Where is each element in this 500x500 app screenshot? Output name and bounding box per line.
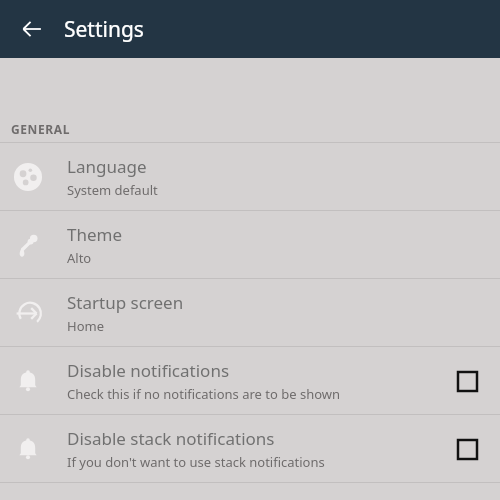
staticText: Startup screen: [67, 291, 184, 314]
staticText: Alto: [67, 249, 92, 267]
button[interactable]: Theme: [0, 211, 500, 278]
staticText: Check this if no notifications are to be…: [67, 385, 341, 403]
button[interactable]: Back: [10, 7, 54, 51]
staticText: If you don't want to use stack notificat…: [67, 453, 325, 471]
staticText: Settings: [64, 15, 144, 44]
staticText: Theme: [67, 223, 123, 246]
button[interactable]: Toggle checkbox: [452, 366, 482, 396]
staticText: Disable notifications: [67, 359, 230, 382]
staticText: Language: [67, 155, 147, 178]
button[interactable]: Startup screen: [0, 279, 500, 346]
staticText: Disable stack notifications: [67, 427, 275, 450]
staticText: Home: [67, 317, 104, 335]
button[interactable]: Language: [0, 143, 500, 210]
button[interactable]: Disable notifications: [0, 347, 500, 414]
button[interactable]: Toggle checkbox: [452, 434, 482, 464]
staticText: System default: [67, 181, 158, 199]
staticText: GENERAL: [11, 121, 70, 137]
button[interactable]: Disable stack notifications: [0, 415, 500, 482]
